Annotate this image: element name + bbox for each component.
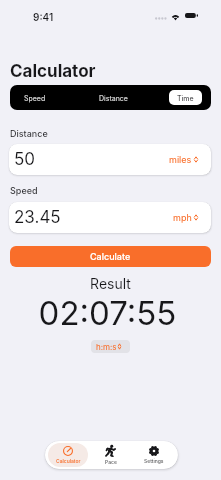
staticText: Speed: [24, 94, 46, 102]
staticText: Calculate: [90, 251, 131, 262]
button[interactable]: h:m:s: [91, 340, 130, 353]
staticText: Pace: [105, 459, 117, 465]
staticText: Settings: [144, 458, 164, 464]
button[interactable]: Speed: [14, 90, 55, 105]
staticText: miles: [169, 154, 192, 165]
other: Calculator: [63, 446, 73, 456]
other: Pace: [105, 445, 116, 457]
button[interactable]: 23.45: [9, 202, 211, 233]
button[interactable]: Distance: [88, 90, 138, 105]
staticText: h:m:s: [96, 342, 117, 352]
staticText: 02:07:55: [0, 293, 218, 333]
other: Settings: [149, 446, 159, 456]
staticText: 23.45: [14, 207, 173, 228]
button[interactable]: Time: [169, 90, 202, 105]
staticText: Speed: [10, 185, 38, 196]
staticText: Distance: [99, 94, 128, 102]
staticText: Time: [177, 94, 194, 102]
staticText: 9:41: [33, 11, 54, 23]
staticText: mph: [173, 212, 192, 223]
staticText: Calculator: [10, 61, 96, 82]
staticText: Calculator: [56, 458, 81, 464]
button[interactable]: Calculate: [10, 246, 211, 267]
button[interactable]: Calculator: [48, 443, 88, 467]
button[interactable]: Settings: [133, 443, 175, 467]
staticText: Result: [0, 275, 221, 292]
button[interactable]: 50: [9, 144, 211, 175]
staticText: Distance: [10, 128, 48, 139]
button[interactable]: Pace: [94, 443, 127, 467]
staticText: 50: [14, 149, 169, 170]
